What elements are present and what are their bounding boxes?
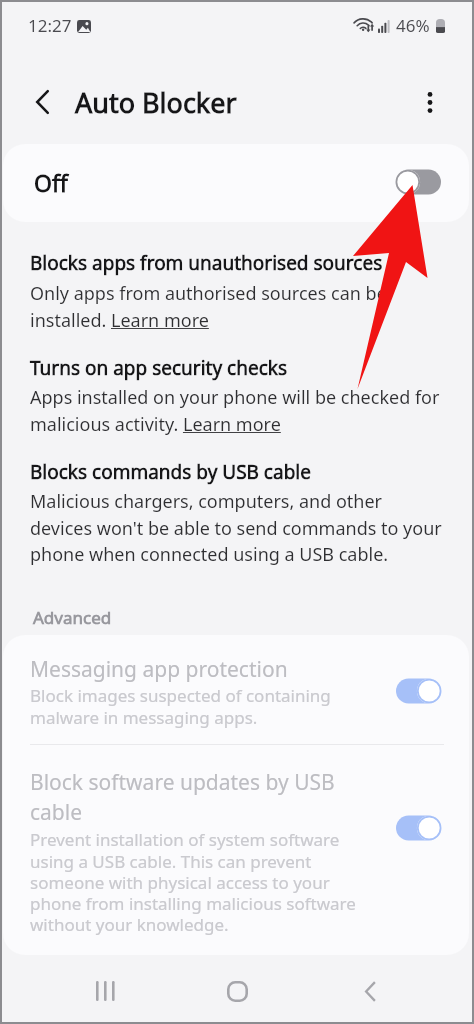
button[interactable]: Block software updates by USB cable (3, 745, 469, 955)
staticText: Block software updates by USB cable (30, 768, 368, 826)
button[interactable]: Home (208, 960, 266, 1022)
staticText: Turns on app security checks (30, 355, 444, 381)
button[interactable]: Off (3, 144, 469, 222)
staticText: Block images suspected of containing mal… (30, 684, 350, 729)
staticText: Malicious chargers, computers, and other… (30, 489, 444, 566)
staticText: Blocks commands by USB cable (30, 459, 444, 485)
button[interactable]: Back (341, 960, 399, 1022)
button[interactable]: More options (408, 78, 452, 126)
staticText: Apps installed on your phone will be che… (30, 385, 444, 436)
staticText: Advanced (33, 606, 112, 629)
staticText: 12:27 (28, 14, 72, 37)
staticText: Off (34, 167, 68, 198)
button[interactable]: Navigate up (20, 78, 64, 126)
button[interactable]: Recent apps (76, 960, 134, 1022)
staticText: Prevent installation of system software … (30, 828, 368, 936)
staticText: 46% (396, 14, 430, 37)
staticText: Blocks apps from unauthorised sources (30, 250, 444, 276)
staticText: Auto Blocker (75, 84, 237, 121)
staticText: Messaging app protection (30, 655, 350, 684)
staticText: Only apps from authorised sources can be… (30, 281, 444, 332)
button[interactable]: Messaging app protection (3, 635, 469, 744)
